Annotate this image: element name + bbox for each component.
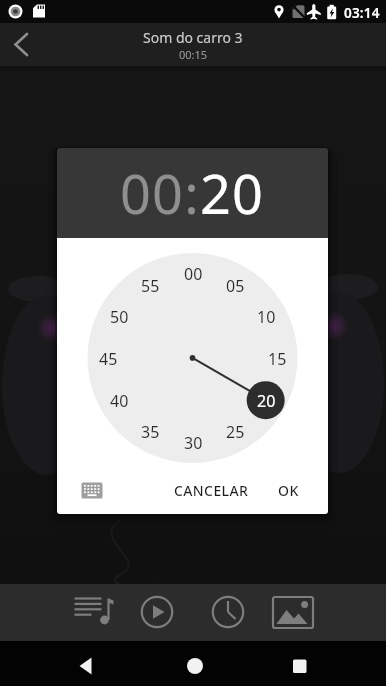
button[interactable]: CANCELAR xyxy=(162,472,261,508)
button[interactable] xyxy=(62,641,109,686)
staticText: CANCELAR xyxy=(174,481,249,500)
staticText: Som do carro 3 xyxy=(143,28,243,47)
staticText: 00 xyxy=(184,263,203,283)
staticText: 35 xyxy=(141,421,160,441)
staticText: 05 xyxy=(226,275,245,295)
button[interactable] xyxy=(171,641,218,686)
staticText: 30 xyxy=(184,432,203,452)
staticText: 25 xyxy=(226,421,245,441)
staticText: 45 xyxy=(99,348,118,368)
button[interactable] xyxy=(133,588,181,636)
button[interactable] xyxy=(81,479,105,503)
staticText: 00:15 xyxy=(179,47,208,62)
button[interactable] xyxy=(269,588,317,636)
staticText: 10 xyxy=(257,306,276,326)
button[interactable] xyxy=(276,641,323,686)
button[interactable] xyxy=(0,23,43,66)
button[interactable] xyxy=(70,588,118,636)
staticText: 20 xyxy=(257,390,276,410)
button[interactable] xyxy=(204,588,252,636)
staticText: 00: xyxy=(120,156,200,230)
staticText: 40 xyxy=(110,390,129,410)
button[interactable]: OK xyxy=(265,472,312,508)
staticText: OK xyxy=(278,481,299,500)
staticText: 50 xyxy=(110,306,129,326)
staticText: 20 xyxy=(200,156,265,230)
staticText: 03:14 xyxy=(344,4,380,22)
staticText: 15 xyxy=(268,348,287,368)
staticText: 55 xyxy=(141,275,160,295)
